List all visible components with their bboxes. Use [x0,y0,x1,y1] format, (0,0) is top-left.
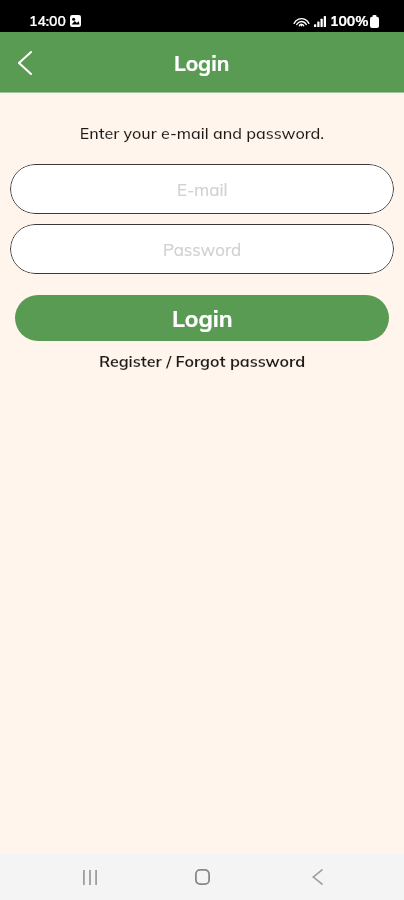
button[interactable]: Home [174,854,230,900]
staticText: Login [172,304,233,333]
button[interactable]: Password [10,224,394,274]
staticText: 100% [330,12,369,30]
button[interactable]: Recents [59,854,115,900]
button[interactable]: Back [2,40,48,86]
staticText: Enter your e-mail and password. [0,123,404,143]
button[interactable]: Login [15,295,389,341]
staticText: E-mail [177,179,228,200]
button[interactable]: Register / Forgot password [0,351,404,371]
staticText: Password [163,239,242,260]
button[interactable]: Back [289,854,345,900]
staticText: Login [174,50,230,76]
staticText: 14:00 [29,12,66,30]
button[interactable]: E-mail [10,164,394,214]
